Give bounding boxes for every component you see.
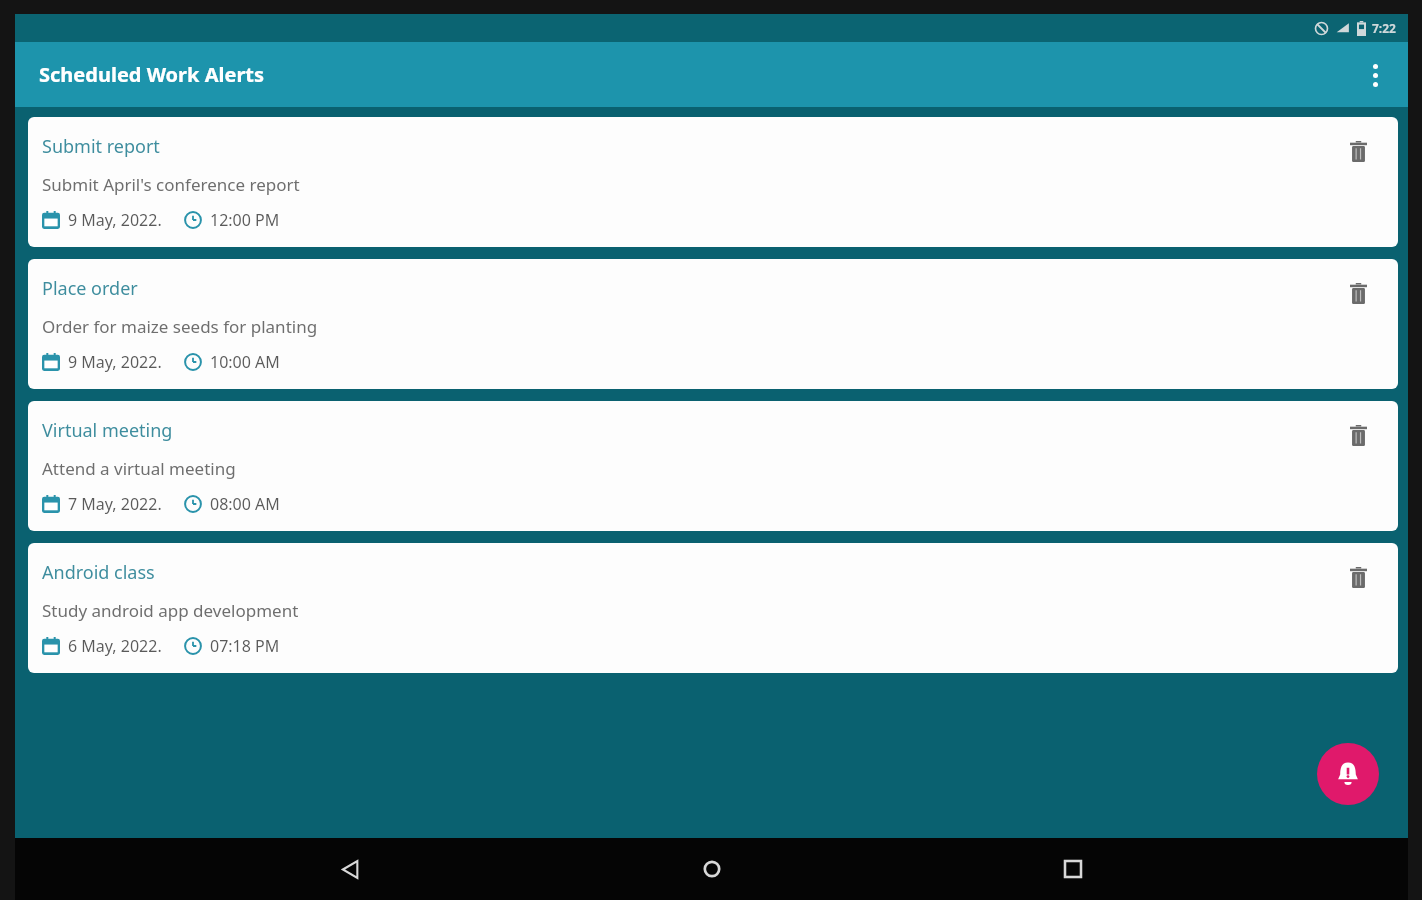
staticText: Submit April's conference report xyxy=(42,173,300,196)
staticText: Android class xyxy=(42,560,155,585)
button[interactable]: Android class xyxy=(28,543,1398,673)
staticText: 9 May, 2022. xyxy=(68,209,162,231)
button[interactable]: More options xyxy=(1351,51,1399,99)
staticText: Place order xyxy=(42,276,138,301)
button[interactable]: Delete Android class xyxy=(1340,559,1376,595)
button[interactable]: Submit report xyxy=(28,117,1398,247)
staticText: Order for maize seeds for planting xyxy=(42,315,318,338)
staticText: 6 May, 2022. xyxy=(68,635,162,657)
button[interactable]: Recent apps xyxy=(1046,842,1100,896)
staticText: Attend a virtual meeting xyxy=(42,457,236,480)
staticText: 10:00 AM xyxy=(210,351,280,373)
button[interactable]: Delete Place order xyxy=(1340,275,1376,311)
button[interactable]: Place order xyxy=(28,259,1398,389)
staticText: 7:22 xyxy=(1372,20,1396,36)
button[interactable]: Virtual meeting xyxy=(28,401,1398,531)
button[interactable]: Home xyxy=(685,842,739,896)
staticText: 7 May, 2022. xyxy=(68,493,162,515)
button[interactable]: Delete Virtual meeting xyxy=(1340,417,1376,453)
button[interactable]: Back xyxy=(323,842,377,896)
staticText: 07:18 PM xyxy=(210,635,280,657)
staticText: 9 May, 2022. xyxy=(68,351,162,373)
staticText: 12:00 PM xyxy=(210,209,280,231)
staticText: Virtual meeting xyxy=(42,418,173,443)
staticText: 08:00 AM xyxy=(210,493,280,515)
staticText: Submit report xyxy=(42,134,160,159)
staticText: Scheduled Work Alerts xyxy=(39,61,265,88)
button[interactable]: Delete Submit report xyxy=(1340,133,1376,169)
staticText: Study android app development xyxy=(42,599,299,622)
button[interactable]: Add alert xyxy=(1317,743,1379,805)
